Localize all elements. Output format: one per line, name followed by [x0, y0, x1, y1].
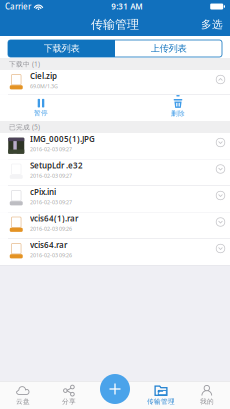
button[interactable]: IMG_0005(1).JPG	[0, 133, 230, 159]
button[interactable]: SetupLdr .e32	[0, 159, 230, 185]
button[interactable]: vcis64(1).rar	[0, 212, 230, 238]
button[interactable]: 上传列表	[115, 40, 222, 57]
staticText: 下载中 (1)	[9, 60, 40, 68]
staticText: 2016-02-03 09:26	[30, 252, 72, 259]
staticText: 9:31 AM	[111, 1, 142, 12]
staticText: 分享	[62, 397, 76, 406]
staticText: SetupLdr .e32	[30, 160, 83, 171]
staticText: vcis64(1).rar	[30, 213, 78, 224]
staticText: Ciel.zip	[30, 70, 57, 81]
staticText: 下载列表	[43, 43, 79, 54]
staticText: 暂停	[34, 109, 48, 117]
button[interactable]: 传输管理	[138, 381, 184, 409]
staticText: 已完成 (5)	[9, 123, 40, 131]
button[interactable]: Ciel.zip	[0, 70, 230, 94]
button[interactable]: Add	[100, 374, 130, 404]
staticText: 多选	[201, 18, 223, 31]
button[interactable]: 下载列表	[8, 40, 115, 57]
staticText: 我的	[200, 397, 214, 406]
staticText: 传输管理	[91, 17, 139, 32]
staticText: 2016-02-03 09:27	[30, 146, 72, 153]
staticText: cPix.ini	[30, 186, 56, 197]
staticText: 传输管理	[147, 397, 175, 406]
button[interactable]: 云盘	[0, 381, 46, 409]
button[interactable]: 分享	[46, 381, 92, 409]
button[interactable]: cPix.ini	[0, 186, 230, 212]
staticText: 2016-02-03 09:27	[30, 172, 72, 179]
button[interactable]: 我的	[184, 381, 230, 409]
button[interactable]: vcis64.rar	[0, 239, 230, 265]
staticText: 2016-02-03 09:26	[30, 225, 72, 232]
staticText: 删除	[171, 109, 185, 118]
staticText: vcis64.rar	[30, 239, 67, 250]
staticText: IMG_0005(1).JPG	[30, 133, 95, 144]
staticText: 2016-02-03 09:27	[30, 199, 72, 206]
staticText: 上传列表	[150, 43, 186, 54]
button[interactable]: 暂停	[0, 95, 82, 121]
button[interactable]: 多选	[194, 14, 230, 35]
button[interactable]: 删除	[137, 95, 219, 121]
staticText: 69.0M/1.3G	[30, 83, 58, 90]
staticText: Carrier	[5, 1, 31, 12]
staticText: 云盘	[16, 397, 30, 406]
